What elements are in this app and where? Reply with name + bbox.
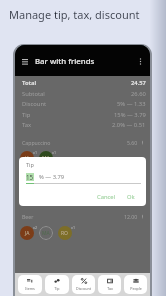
staticText: x1	[33, 150, 37, 155]
staticText: Tax	[107, 286, 113, 291]
button[interactable]: Beer	[22, 212, 145, 221]
staticText: Cancel	[97, 193, 116, 201]
staticText: JA	[25, 230, 30, 237]
staticText: x1	[71, 225, 75, 230]
button[interactable]: Items	[18, 275, 42, 294]
button[interactable]: Subtotal	[22, 89, 146, 99]
staticText: MA	[42, 230, 50, 237]
staticText: Discount	[76, 286, 91, 291]
button[interactable]: More options	[136, 57, 145, 66]
button[interactable]: Menu	[20, 57, 29, 66]
staticText: Cappuccino	[22, 139, 51, 146]
staticText: 24.57	[131, 79, 146, 87]
staticText: JA	[25, 155, 30, 162]
staticText: MA	[42, 155, 50, 162]
staticText: x2	[33, 225, 37, 230]
button[interactable]: Cancel	[94, 191, 119, 203]
staticText: Beer	[22, 213, 34, 220]
button[interactable]: Tip	[22, 110, 146, 120]
button[interactable]: Discount	[22, 99, 146, 109]
staticText: Discount	[22, 100, 47, 108]
staticText: Manage tip, tax, discount	[9, 7, 140, 22]
staticText: 12.00	[124, 213, 138, 220]
staticText: 2.0% — 0.51	[112, 121, 146, 129]
staticText: 5.60	[127, 139, 138, 146]
button[interactable]: Tax	[98, 275, 121, 294]
staticText: % — 3.79	[39, 173, 65, 181]
button[interactable]: JA	[20, 226, 34, 240]
button[interactable]: Discount	[72, 275, 95, 294]
button[interactable]: Total	[22, 78, 146, 88]
staticText: Tip	[54, 286, 60, 291]
staticText: RO	[61, 230, 69, 237]
button[interactable]: JA	[20, 151, 34, 165]
staticText: 15	[26, 173, 34, 181]
button[interactable]: RO	[58, 226, 72, 240]
button[interactable]: MA	[39, 226, 53, 240]
staticText: 15% — 3.79	[114, 111, 146, 119]
staticText: Total	[22, 79, 37, 87]
staticText: Tip	[26, 161, 34, 168]
staticText: Tip	[22, 111, 31, 119]
button[interactable]: People	[124, 275, 147, 294]
staticText: Subtotal	[22, 90, 45, 98]
button[interactable]: MA	[39, 151, 53, 165]
staticText: Items	[25, 286, 35, 291]
button[interactable]: Ok	[124, 191, 138, 203]
staticText: Ok	[127, 193, 135, 201]
staticText: 5% — 1.33	[117, 100, 146, 108]
staticText: Bar with friends	[35, 56, 95, 67]
staticText: People	[130, 286, 142, 291]
button[interactable]: Tax	[22, 120, 146, 130]
staticText: 26.60	[131, 90, 146, 98]
staticText: Tax	[22, 121, 32, 129]
button[interactable]: Cappuccino	[22, 138, 145, 147]
staticText: x1	[52, 150, 56, 155]
button[interactable]: Tip	[45, 275, 69, 294]
